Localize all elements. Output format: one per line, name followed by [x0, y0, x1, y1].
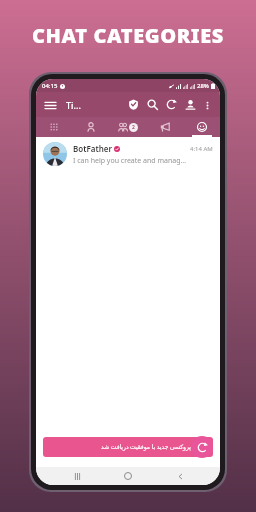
button[interactable]: پروکسی جدید با موفقیت دریافت شد — [43, 437, 213, 457]
button[interactable]: Refresh proxy — [191, 436, 213, 458]
button[interactable]: Contacts — [181, 95, 200, 114]
staticText: CHAT CATEGORIES — [32, 22, 224, 49]
button[interactable]: Home — [117, 467, 139, 485]
button[interactable]: BotFather — [36, 137, 220, 171]
staticText: BotFather — [73, 143, 112, 154]
button[interactable]: Refresh — [162, 95, 181, 114]
staticText: 2 — [132, 124, 135, 131]
staticText: I can help you create and manag… — [73, 156, 187, 166]
button[interactable]: Private chats — [72, 117, 109, 137]
staticText: 4:14 AM — [190, 145, 213, 153]
staticText: پروکسی جدید با موفقیت دریافت شد — [101, 443, 191, 451]
staticText: 28% — [197, 82, 209, 90]
button[interactable]: Channels — [146, 117, 183, 137]
button[interactable]: Search — [143, 95, 162, 114]
button[interactable]: More options — [200, 98, 214, 112]
button[interactable]: All chats — [36, 117, 72, 137]
staticText: 04:15 — [42, 82, 58, 90]
button[interactable]: Menu — [42, 97, 58, 113]
button[interactable]: Bots — [183, 117, 220, 137]
button[interactable]: Groups — [109, 117, 146, 137]
button[interactable]: Recent apps — [66, 467, 88, 485]
button[interactable]: Verified channels — [124, 95, 143, 114]
staticText: Ti... — [66, 99, 81, 111]
button[interactable]: Back — [169, 467, 191, 485]
